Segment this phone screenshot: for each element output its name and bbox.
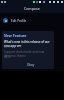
staticText: New Feature xyxy=(4,33,27,38)
staticText: Okay xyxy=(27,63,35,67)
staticText: Support dark mode and new dynamic theme xyxy=(4,50,54,58)
staticText: v0.5 xyxy=(4,45,10,49)
staticText: v0.4 xyxy=(4,55,10,59)
staticText: What's new in this release of our new ap… xyxy=(4,40,54,48)
button[interactable]: New Feature xyxy=(2,31,54,69)
staticText: Compose xyxy=(24,6,40,11)
button[interactable]: Edit Profile xyxy=(0,14,64,27)
staticText: Edit Profile xyxy=(11,19,27,23)
button[interactable]: Okay xyxy=(25,62,37,68)
